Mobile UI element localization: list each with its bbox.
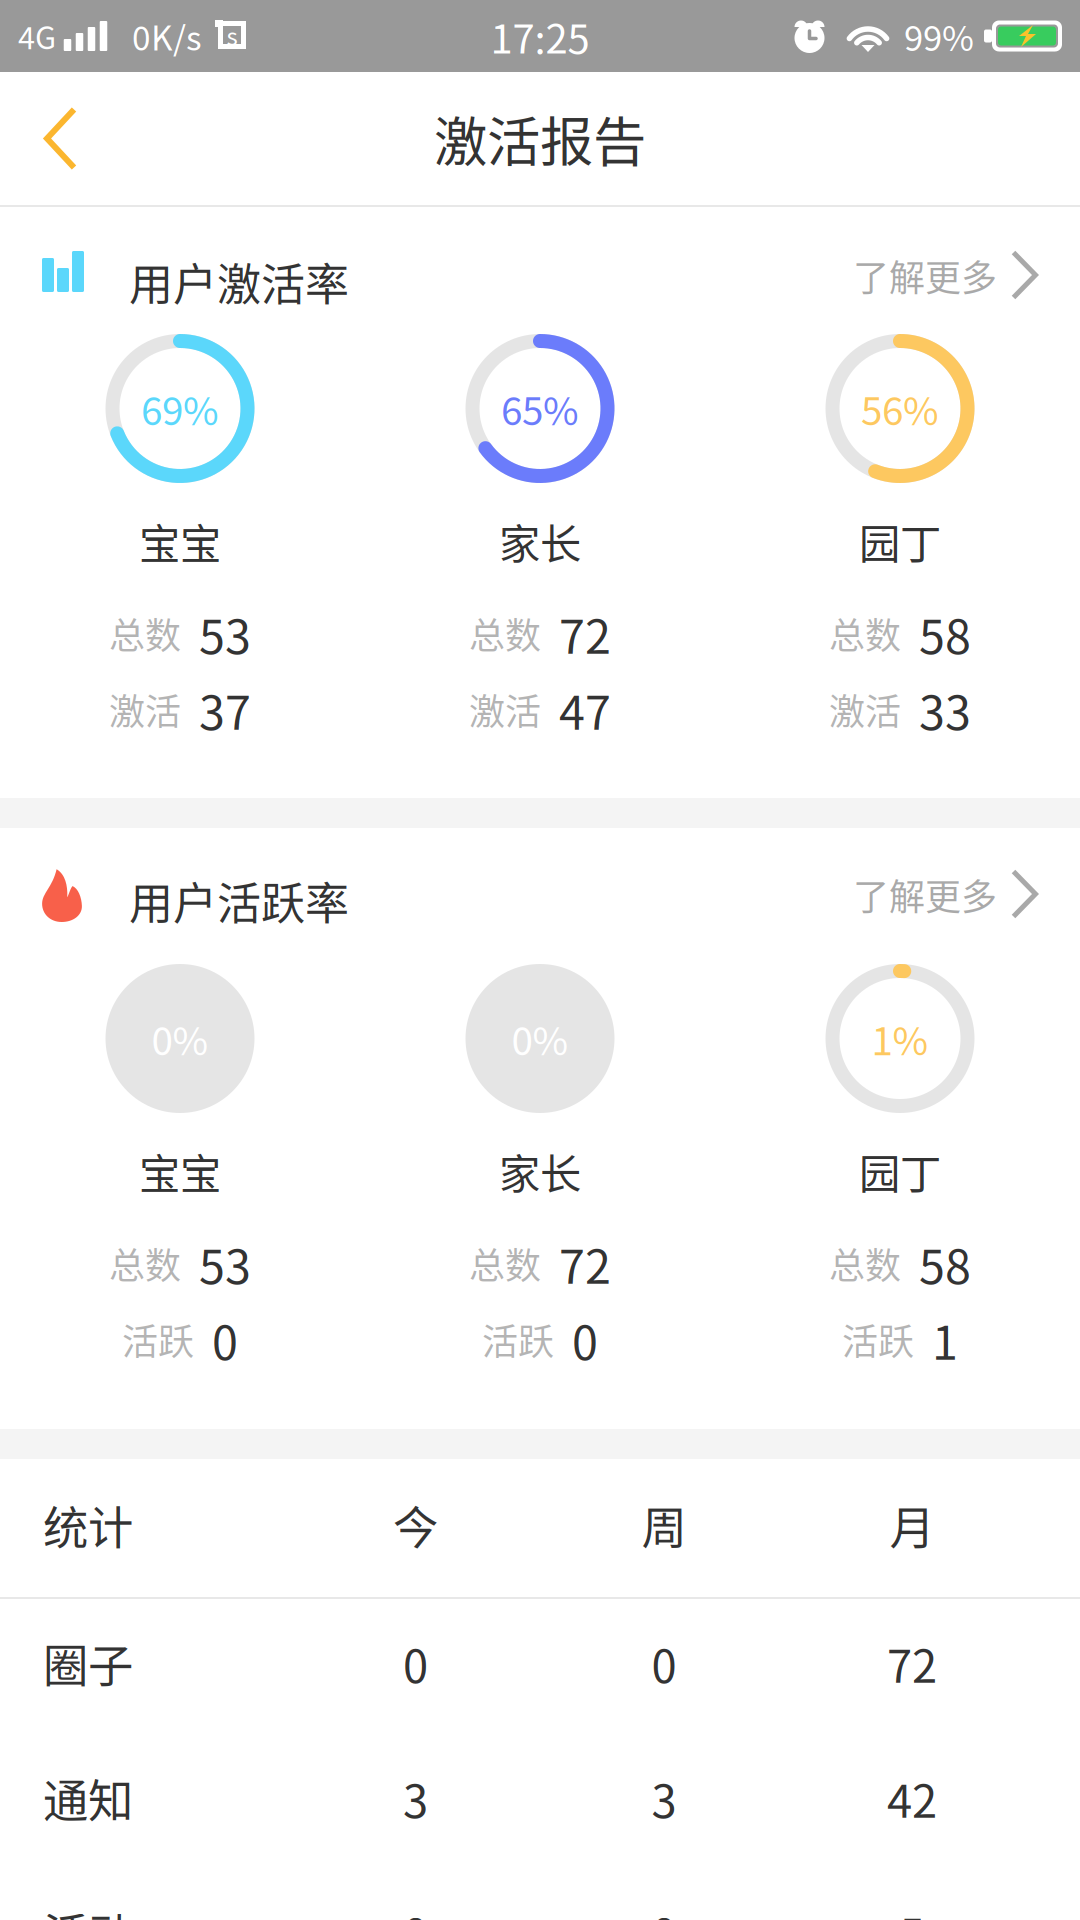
staticText: 0 <box>651 1899 676 1920</box>
staticText: 总数 <box>469 1237 541 1289</box>
staticText: 72 <box>559 1230 611 1297</box>
staticText: 53 <box>199 600 251 667</box>
staticText: 47 <box>559 676 611 743</box>
staticText: 宝宝 <box>139 511 221 571</box>
staticText: 周 <box>641 1492 686 1558</box>
staticText: 5 <box>899 1899 924 1920</box>
staticText: 3 <box>651 1765 676 1831</box>
button[interactable]: 返回 <box>0 76 113 200</box>
staticText: 通知 <box>43 1765 133 1831</box>
staticText: 激活报告 <box>434 100 646 177</box>
staticText: 了解更多 <box>853 249 997 301</box>
staticText: 42 <box>887 1765 937 1831</box>
staticText: 总数 <box>109 1237 181 1289</box>
staticText: 0% <box>511 1010 568 1066</box>
staticText: 33 <box>919 676 971 743</box>
staticText: 用户活跃率 <box>129 869 349 932</box>
staticText: 家长 <box>499 511 581 571</box>
staticText: 总数 <box>469 607 541 659</box>
staticText: 统计 <box>43 1492 133 1558</box>
staticText: 家长 <box>499 1141 581 1201</box>
staticText: 58 <box>919 600 971 667</box>
staticText: 了解更多 <box>853 868 997 920</box>
staticText: s <box>226 18 237 52</box>
staticText: 宝宝 <box>139 1141 221 1201</box>
staticText: 53 <box>199 1230 251 1297</box>
staticText: 园丁 <box>859 1141 941 1201</box>
staticText: 0 <box>403 1630 428 1696</box>
staticText: 99% <box>904 11 974 61</box>
staticText: 圈子 <box>43 1630 133 1696</box>
staticText: 用户激活率 <box>129 250 349 313</box>
staticText: 今 <box>393 1492 438 1558</box>
staticText: 65% <box>501 380 579 436</box>
staticText: 激活 <box>469 683 541 735</box>
staticText: 总数 <box>829 1237 901 1289</box>
staticText: 激活 <box>829 683 901 735</box>
staticText: 4G <box>18 14 56 58</box>
staticText: 0K/s <box>132 12 202 60</box>
staticText: 72 <box>559 600 611 667</box>
staticText: 1% <box>871 1010 928 1066</box>
staticText: 0 <box>572 1306 598 1373</box>
staticText: 月 <box>889 1492 934 1558</box>
staticText: 活动 <box>43 1899 133 1920</box>
staticText: 17:25 <box>490 7 589 65</box>
staticText: 56% <box>861 380 939 436</box>
staticText: 1 <box>932 1306 958 1373</box>
staticText: 总数 <box>829 607 901 659</box>
staticText: 0 <box>651 1630 676 1696</box>
staticText: 0 <box>212 1306 238 1373</box>
staticText: 72 <box>887 1630 937 1696</box>
staticText: 0 <box>403 1899 428 1920</box>
staticText: 3 <box>403 1765 428 1831</box>
staticText: 总数 <box>109 607 181 659</box>
staticText: 园丁 <box>859 511 941 571</box>
staticText: 69% <box>141 380 219 436</box>
staticText: 活跃 <box>842 1313 914 1365</box>
button[interactable]: 了解更多 <box>853 250 1038 313</box>
staticText: 活跃 <box>482 1313 554 1365</box>
staticText: 0% <box>151 1010 208 1066</box>
staticText: 37 <box>199 676 251 743</box>
staticText: 58 <box>919 1230 971 1297</box>
button[interactable]: 了解更多 <box>853 869 1038 932</box>
staticText: 活跃 <box>122 1313 194 1365</box>
staticText: 激活 <box>109 683 181 735</box>
